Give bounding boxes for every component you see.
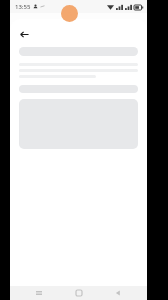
staticText: 13:55	[15, 3, 31, 11]
button[interactable]: Back	[107, 286, 129, 300]
button[interactable]: Home	[68, 286, 90, 300]
button[interactable]: Back	[15, 25, 33, 43]
button[interactable]: Profile avatar	[61, 5, 78, 22]
button[interactable]: Recents	[28, 286, 50, 300]
